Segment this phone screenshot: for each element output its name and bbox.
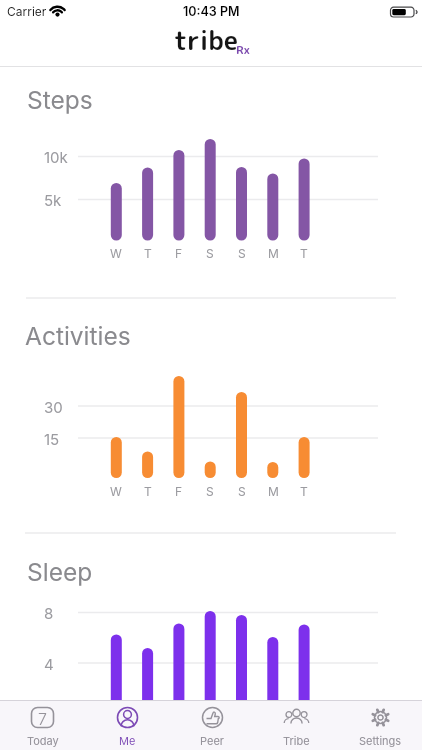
staticText: W xyxy=(110,246,122,261)
staticText: T xyxy=(300,246,308,261)
staticText: Today xyxy=(27,734,59,747)
staticText: F xyxy=(175,484,183,499)
staticText: 15 xyxy=(44,430,60,448)
button[interactable]: 7 xyxy=(0,700,85,750)
staticText: T xyxy=(144,246,152,261)
staticText: T xyxy=(144,484,152,499)
staticText: W xyxy=(110,484,122,499)
staticText: 8 xyxy=(44,604,54,622)
staticText: 4 xyxy=(44,655,54,673)
staticText: Rx xyxy=(236,41,250,58)
staticText: tribe xyxy=(174,23,238,59)
staticText: S xyxy=(206,484,214,499)
staticText: Me xyxy=(119,734,136,747)
staticText: Peer xyxy=(200,734,224,747)
staticText: 5k xyxy=(44,191,62,209)
staticText: T xyxy=(300,484,308,499)
staticText: Sleep xyxy=(27,557,93,587)
staticText: Tribe xyxy=(283,734,310,747)
staticText: Steps xyxy=(27,85,93,115)
button[interactable]: Settings xyxy=(338,700,422,750)
staticText: S xyxy=(206,246,214,261)
staticText: 30 xyxy=(44,398,63,416)
button[interactable]: Tribe xyxy=(254,700,338,750)
staticText: S xyxy=(238,246,246,261)
staticText: 10:43 PM xyxy=(183,4,240,19)
staticText: 10k xyxy=(44,148,68,166)
staticText: M xyxy=(268,484,279,499)
staticText: M xyxy=(268,246,279,261)
staticText: F xyxy=(175,246,183,261)
staticText: Carrier xyxy=(7,4,47,19)
staticText: Activities xyxy=(25,321,131,351)
staticText: Settings xyxy=(359,734,402,747)
staticText: S xyxy=(238,484,246,499)
button[interactable]: Peer xyxy=(170,700,254,750)
staticText: 7 xyxy=(38,709,47,728)
button[interactable]: Me xyxy=(85,700,170,750)
